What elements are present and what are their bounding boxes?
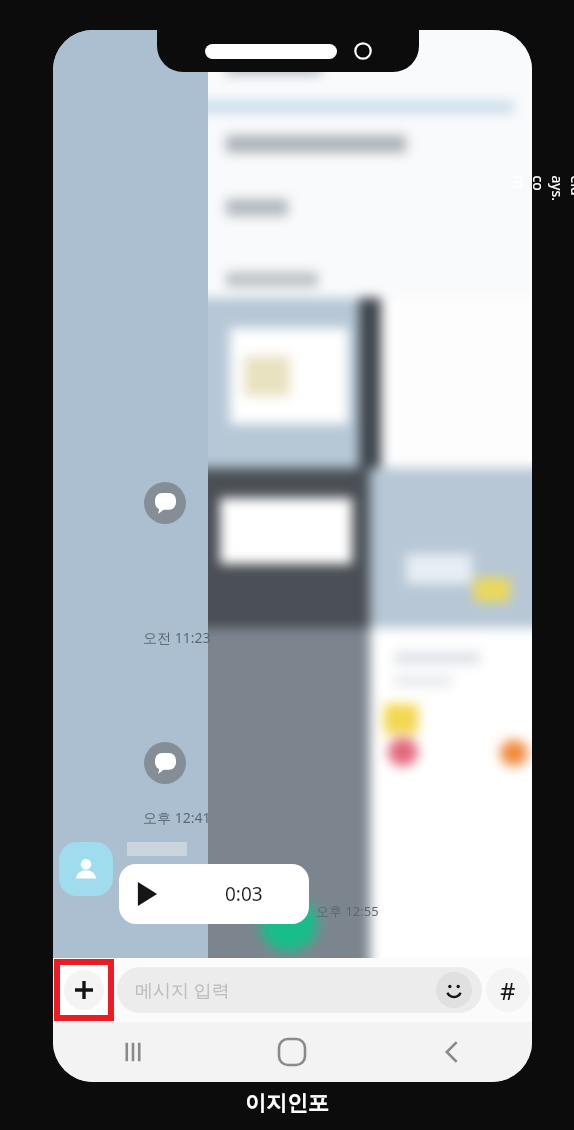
- button[interactable]: Hashtag: [486, 968, 530, 1012]
- button[interactable]: Add attachment: [57, 962, 111, 1018]
- staticText: 오후 12:55: [316, 902, 379, 920]
- button[interactable]: 메시지 입력: [117, 967, 482, 1013]
- staticText: ei.reidays.com: [509, 175, 574, 201]
- staticText: 0:03: [225, 881, 263, 907]
- button[interactable]: Message: [144, 742, 186, 784]
- staticText: 오전 11:23: [143, 628, 211, 647]
- button[interactable]: 0:03: [119, 864, 309, 924]
- staticText: 메시지 입력: [135, 978, 230, 1003]
- button[interactable]: Home: [212, 1022, 372, 1082]
- button[interactable]: Recents: [53, 1022, 212, 1082]
- button[interactable]: Back: [372, 1022, 532, 1082]
- button[interactable]: Message: [144, 482, 186, 524]
- button[interactable]: Emoji: [436, 972, 472, 1008]
- staticText: #: [500, 974, 516, 1007]
- staticText: 오후 12:41: [143, 808, 211, 827]
- staticText: 이지인포: [245, 1090, 329, 1116]
